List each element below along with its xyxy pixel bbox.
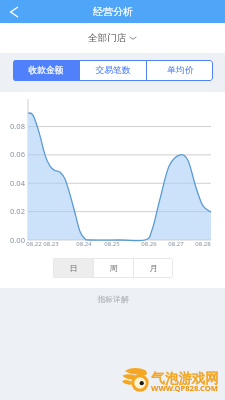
staticText: 08.27 [168, 240, 184, 248]
staticText: WWW.QP828.COM [151, 383, 218, 393]
staticText: 周 [109, 263, 118, 273]
staticText: 0.04 [10, 178, 25, 188]
button[interactable]: 月 [134, 258, 173, 278]
staticText: 0.00 [10, 235, 25, 245]
button[interactable]: 日 [53, 258, 93, 278]
button[interactable]: 交易笔数 [80, 60, 146, 81]
staticText: 08.28 [195, 240, 211, 248]
staticText: 0.08 [10, 121, 25, 131]
button[interactable]: Back [0, 0, 26, 23]
staticText: 日 [69, 263, 78, 273]
button[interactable]: 全部门店 [82, 28, 143, 48]
staticText: 全部门店 [88, 32, 126, 44]
staticText: 经营分析 [93, 5, 133, 18]
staticText: 气泡游戏网 [151, 370, 219, 387]
button[interactable]: 周 [94, 258, 133, 278]
staticText: 0.06 [10, 149, 25, 159]
button[interactable]: 收款金额 [13, 60, 79, 81]
staticText: 月 [149, 263, 158, 273]
staticText: 单均价 [167, 65, 194, 76]
staticText: 08.25 [104, 240, 120, 248]
button[interactable]: 单均价 [147, 60, 213, 81]
staticText: 08.23 [43, 240, 59, 248]
button[interactable]: 指标详解 [93, 290, 133, 308]
staticText: 收款金额 [28, 65, 64, 76]
staticText: 08.22 [26, 240, 42, 248]
staticText: 0.02 [10, 206, 25, 216]
staticText: 交易笔数 [95, 65, 131, 76]
staticText: 08.24 [76, 240, 92, 248]
staticText: 08.26 [141, 240, 157, 248]
